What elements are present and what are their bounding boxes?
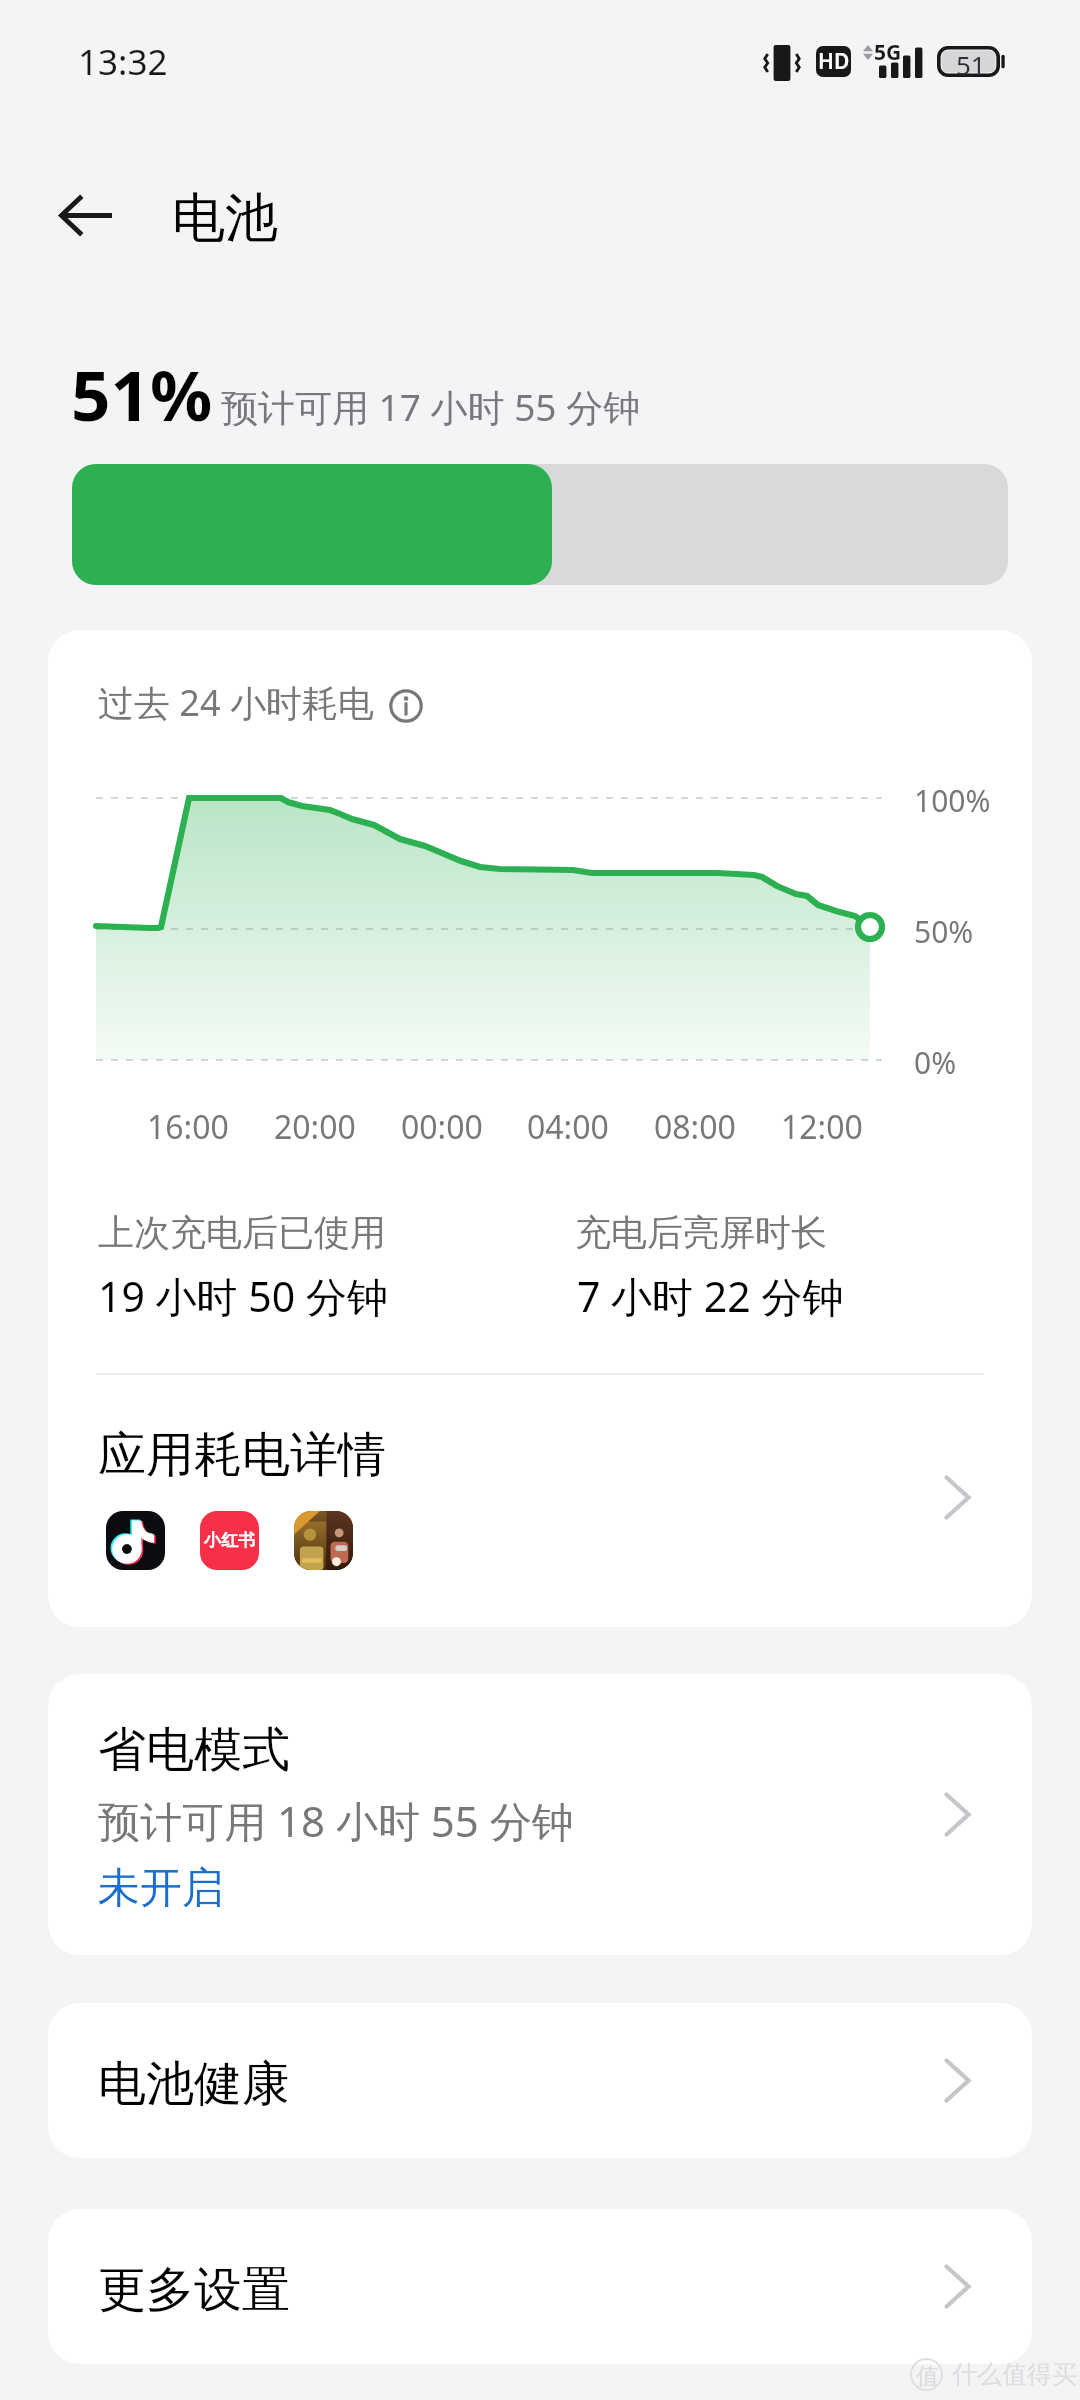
staticText: 20:00	[274, 1105, 356, 1149]
staticText: 13:32	[78, 38, 168, 86]
staticText: 上次充电后已使用	[98, 1210, 386, 1255]
staticText: 省电模式	[98, 1720, 290, 1780]
staticText: 100%	[914, 780, 991, 821]
staticText: HD	[818, 47, 850, 76]
staticText: 51	[956, 47, 986, 78]
staticText: 更多设置	[98, 2260, 290, 2320]
button[interactable]: 省电模式	[48, 1674, 1032, 1955]
staticText: 小红书	[204, 1530, 255, 1551]
staticText: 04:00	[527, 1105, 609, 1149]
staticText: 电池健康	[98, 2054, 290, 2114]
staticText: 51%	[71, 347, 213, 441]
staticText: 应用耗电详情	[98, 1425, 386, 1485]
staticText: 未开启	[98, 1862, 224, 1915]
staticText: 00:00	[401, 1105, 483, 1149]
button[interactable]: 电池健康	[48, 2003, 1032, 2158]
staticText: 19 小时 50 分钟	[98, 1268, 388, 1324]
button[interactable]: 应用耗电详情	[48, 1367, 1032, 1627]
staticText: 16:00	[147, 1105, 229, 1149]
staticText: 电池	[172, 185, 278, 252]
button[interactable]: More information	[389, 689, 423, 723]
staticText: 12:00	[781, 1105, 863, 1149]
staticText: 什么值得买	[952, 2359, 1077, 2390]
staticText: 充电后亮屏时长	[575, 1210, 827, 1255]
button[interactable]: 更多设置	[48, 2209, 1032, 2364]
staticText: 50%	[914, 911, 974, 952]
staticText: 值	[916, 2362, 939, 2391]
staticText: 过去 24 小时耗电	[98, 678, 374, 727]
button[interactable]: Back	[30, 160, 140, 270]
staticText: 08:00	[654, 1105, 736, 1149]
staticText: 预计可用 17 小时 55 分钟	[221, 381, 641, 432]
staticText: 预计可用 18 小时 55 分钟	[98, 1792, 574, 1849]
staticText: 7 小时 22 分钟	[577, 1268, 844, 1324]
staticText: 5G	[874, 38, 902, 67]
staticText: 0%	[914, 1042, 957, 1083]
